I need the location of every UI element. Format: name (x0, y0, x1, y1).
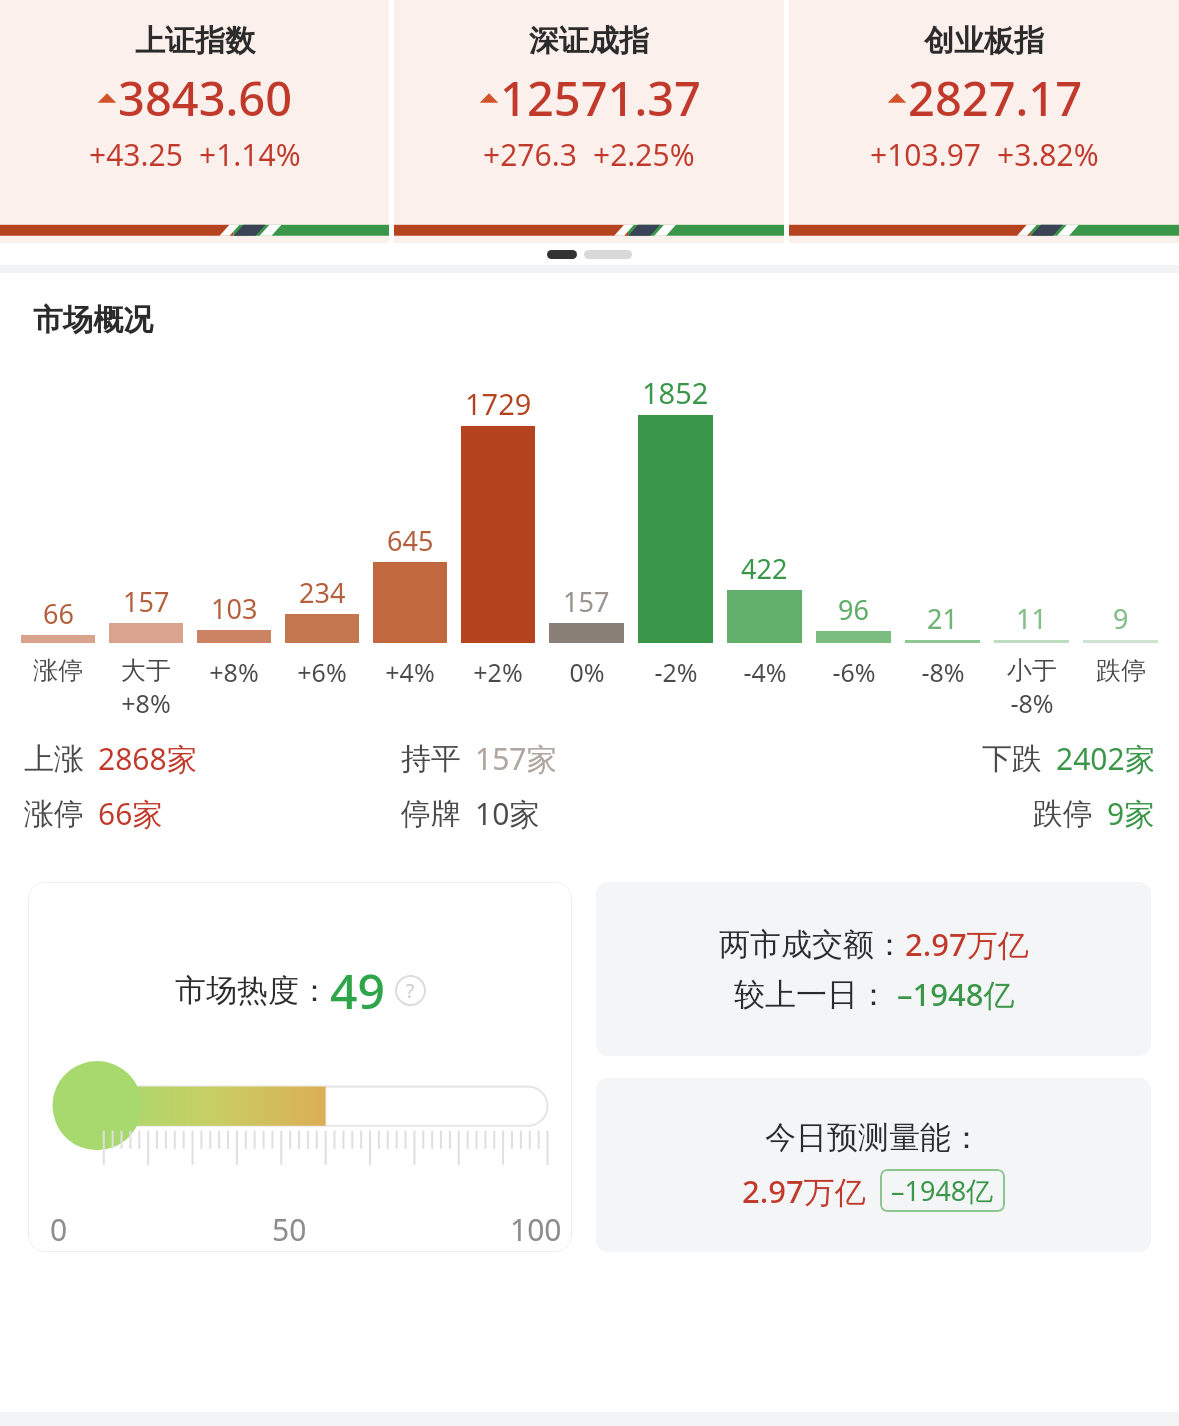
button[interactable]: 两市成交额： (596, 882, 1151, 1056)
staticText: -8% (921, 655, 965, 689)
staticText: 涨停 (33, 655, 83, 686)
button[interactable]: 创业板指 (789, 0, 1179, 243)
staticText: 深证成指 (529, 22, 649, 60)
button[interactable]: 66 (16, 373, 100, 686)
staticText: +2.25% (593, 134, 695, 175)
staticText: 较上一日： (734, 975, 889, 1014)
button[interactable]: 跌停 (778, 793, 1155, 834)
staticText: 21 (927, 600, 958, 637)
staticText: 跌停 (1096, 655, 1146, 686)
button[interactable]: 234 (280, 373, 364, 689)
staticText: ? (406, 978, 415, 1004)
button[interactable]: 103 (192, 373, 276, 689)
staticText: -4% (743, 655, 787, 689)
button[interactable]: 9 (1078, 373, 1163, 686)
staticText: 645 (387, 522, 434, 559)
staticText: +1.14% (199, 134, 301, 175)
staticText: 66家 (98, 793, 163, 834)
staticText: 2402家 (1056, 738, 1155, 779)
staticText: 96 (838, 591, 869, 628)
staticText: 157 (563, 583, 610, 620)
button[interactable]: 今日预测量能： (596, 1078, 1151, 1252)
button[interactable]: 1852 (633, 373, 718, 689)
staticText: +43.25 (89, 134, 183, 175)
staticText: 市场热度： (175, 971, 330, 1010)
button[interactable]: 帮助 (395, 975, 426, 1006)
staticText: 涨停 (24, 795, 84, 833)
staticText: 跌停 (1033, 795, 1093, 833)
staticText: 大于 (121, 655, 171, 686)
staticText: 上证指数 (135, 22, 255, 60)
staticText: 市场概况 (33, 301, 153, 339)
staticText: 10家 (475, 793, 540, 834)
staticText: 234 (299, 574, 346, 611)
staticText: 0% (569, 655, 605, 689)
button[interactable]: 市场热度： (28, 882, 572, 1252)
staticText: +3.82% (997, 134, 1099, 175)
staticText: +103.97 (870, 134, 981, 175)
staticText: 11 (1016, 600, 1047, 637)
staticText: –1948亿 (897, 973, 1015, 1015)
button[interactable]: 21 (900, 373, 985, 689)
staticText: 上涨 (24, 740, 84, 778)
staticText: 停牌 (401, 795, 461, 833)
button[interactable]: 涨停 (24, 793, 401, 834)
button[interactable]: 持平 (401, 738, 778, 779)
staticText: -8% (1010, 686, 1054, 720)
button[interactable]: 422 (722, 373, 807, 689)
button[interactable]: 上证指数 (0, 0, 389, 243)
staticText: 创业板指 (924, 22, 1044, 60)
staticText: 66 (43, 595, 74, 632)
staticText: 持平 (401, 740, 461, 778)
staticText: -2% (654, 655, 698, 689)
staticText: 422 (741, 550, 788, 587)
staticText: 2868家 (98, 738, 197, 779)
staticText: 49 (330, 958, 385, 1023)
staticText: +276.3 (483, 134, 577, 175)
button[interactable]: 1729 (456, 373, 540, 689)
staticText: 今日预测量能： (765, 1118, 982, 1157)
staticText: 9 (1113, 600, 1129, 637)
button[interactable]: 深证成指 (394, 0, 784, 243)
staticText: 2827.17 (908, 66, 1083, 130)
button[interactable]: 96 (811, 373, 896, 689)
button[interactable]: 157 (104, 373, 188, 720)
staticText: 9家 (1107, 793, 1155, 834)
button[interactable]: 645 (368, 373, 452, 689)
staticText: -6% (832, 655, 876, 689)
button[interactable]: 上涨 (24, 738, 401, 779)
staticText: 100 (510, 1209, 562, 1250)
staticText: 下跌 (982, 740, 1042, 778)
button[interactable]: 下跌 (778, 738, 1155, 779)
staticText: +8% (121, 686, 171, 720)
button[interactable]: 停牌 (401, 793, 778, 834)
staticText: 2.97万亿 (905, 923, 1029, 965)
staticText: 0 (50, 1209, 68, 1250)
staticText: 157 (123, 583, 170, 620)
staticText: +4% (385, 655, 435, 689)
staticText: 3843.60 (118, 66, 293, 130)
staticText: +8% (209, 655, 259, 689)
staticText: –1948亿 (891, 1172, 994, 1209)
staticText: 2.97万亿 (742, 1170, 866, 1212)
button[interactable]: 157 (544, 373, 629, 689)
staticText: 小于 (1007, 655, 1057, 686)
button[interactable]: 11 (989, 373, 1074, 720)
staticText: 12571.37 (500, 66, 701, 130)
staticText: 1729 (465, 384, 532, 423)
staticText: 103 (211, 590, 258, 627)
staticText: 157家 (475, 738, 557, 779)
staticText: +2% (473, 655, 523, 689)
staticText: 50 (272, 1209, 307, 1250)
staticText: 两市成交额： (719, 925, 905, 964)
staticText: +6% (297, 655, 347, 689)
staticText: 1852 (642, 373, 709, 412)
